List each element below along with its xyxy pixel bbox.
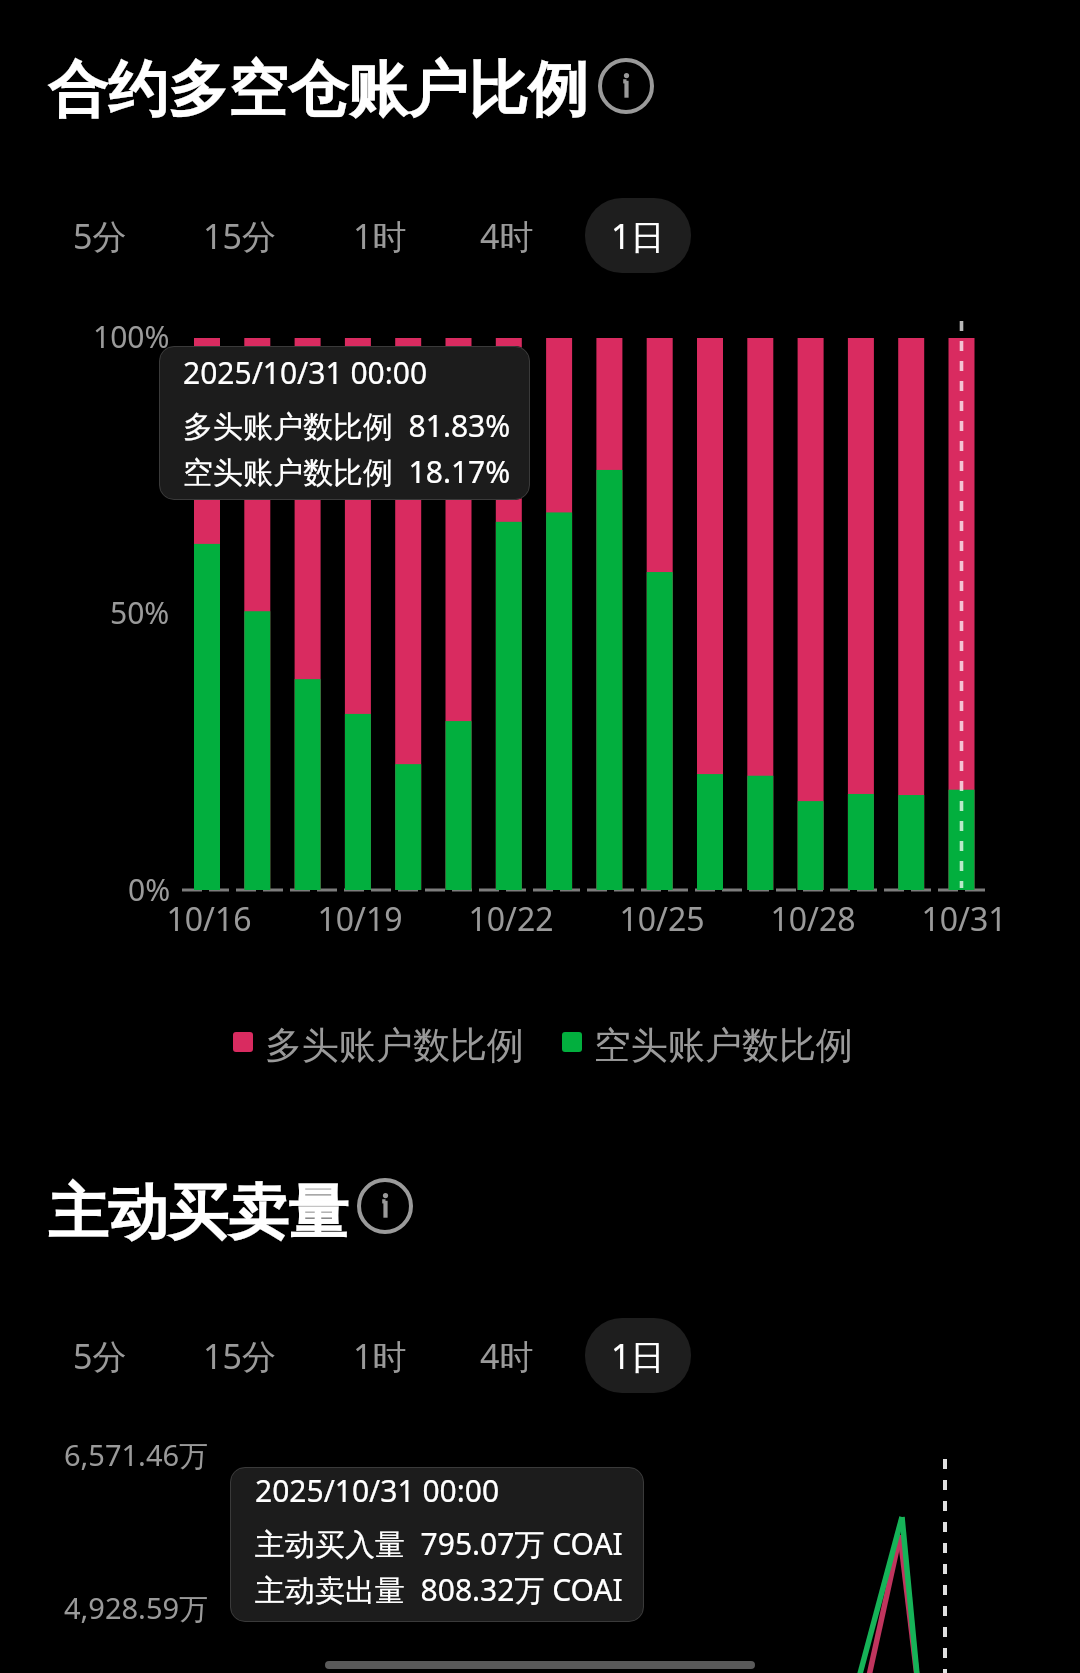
staticText: 6,571.46万	[64, 1435, 209, 1475]
staticText: 15分	[203, 213, 276, 259]
staticText: 多头账户数比例	[265, 1022, 524, 1069]
staticText: 10/31	[894, 897, 1034, 941]
staticText: 4时	[480, 1333, 534, 1379]
button[interactable]: 5分	[53, 1318, 147, 1393]
button[interactable]: Info about long short account ratio	[594, 54, 658, 118]
button[interactable]: Info about taker buy sell volume	[353, 1174, 417, 1238]
staticText: 5分	[73, 1333, 127, 1379]
staticText: 50%	[110, 592, 170, 633]
button[interactable]: 5分	[53, 198, 147, 273]
button[interactable]: 1日	[585, 1318, 691, 1393]
staticText: 合约多空仓账户比例	[48, 52, 588, 128]
staticText: 10/25	[592, 897, 732, 941]
staticText: 主动买卖量	[48, 1175, 348, 1251]
staticText: 2025/10/31 00:00	[255, 1470, 500, 1511]
staticText: 主动卖出量 808.32万 COAI	[255, 1569, 623, 1610]
staticText: 1时	[353, 1333, 407, 1379]
staticText: 1日	[611, 213, 665, 259]
staticText: 10/16	[139, 897, 279, 941]
staticText: 10/19	[290, 897, 430, 941]
staticText: 1日	[611, 1333, 665, 1379]
button[interactable]: 4时	[460, 198, 554, 273]
button[interactable]: 1时	[333, 198, 427, 273]
staticText: 15分	[203, 1333, 276, 1379]
staticText: 2025/10/31 00:00	[183, 352, 428, 393]
staticText: 4时	[480, 213, 534, 259]
button[interactable]: 4时	[460, 1318, 554, 1393]
staticText: 空头账户数比例	[594, 1022, 853, 1069]
staticText: 多头账户数比例 81.83%	[183, 405, 511, 446]
staticText: 0%	[128, 869, 171, 910]
button[interactable]: 1日	[585, 198, 691, 273]
staticText: 10/28	[743, 897, 883, 941]
staticText: 100%	[93, 316, 170, 357]
button[interactable]: 15分	[183, 1318, 296, 1393]
staticText: 4,928.59万	[64, 1588, 209, 1628]
button[interactable]: 1时	[333, 1318, 427, 1393]
staticText: 5分	[73, 213, 127, 259]
button[interactable]: 15分	[183, 198, 296, 273]
staticText: 空头账户数比例 18.17%	[183, 451, 511, 492]
staticText: 10/22	[441, 897, 581, 941]
staticText: 主动买入量 795.07万 COAI	[255, 1523, 623, 1564]
staticText: 1时	[353, 213, 407, 259]
